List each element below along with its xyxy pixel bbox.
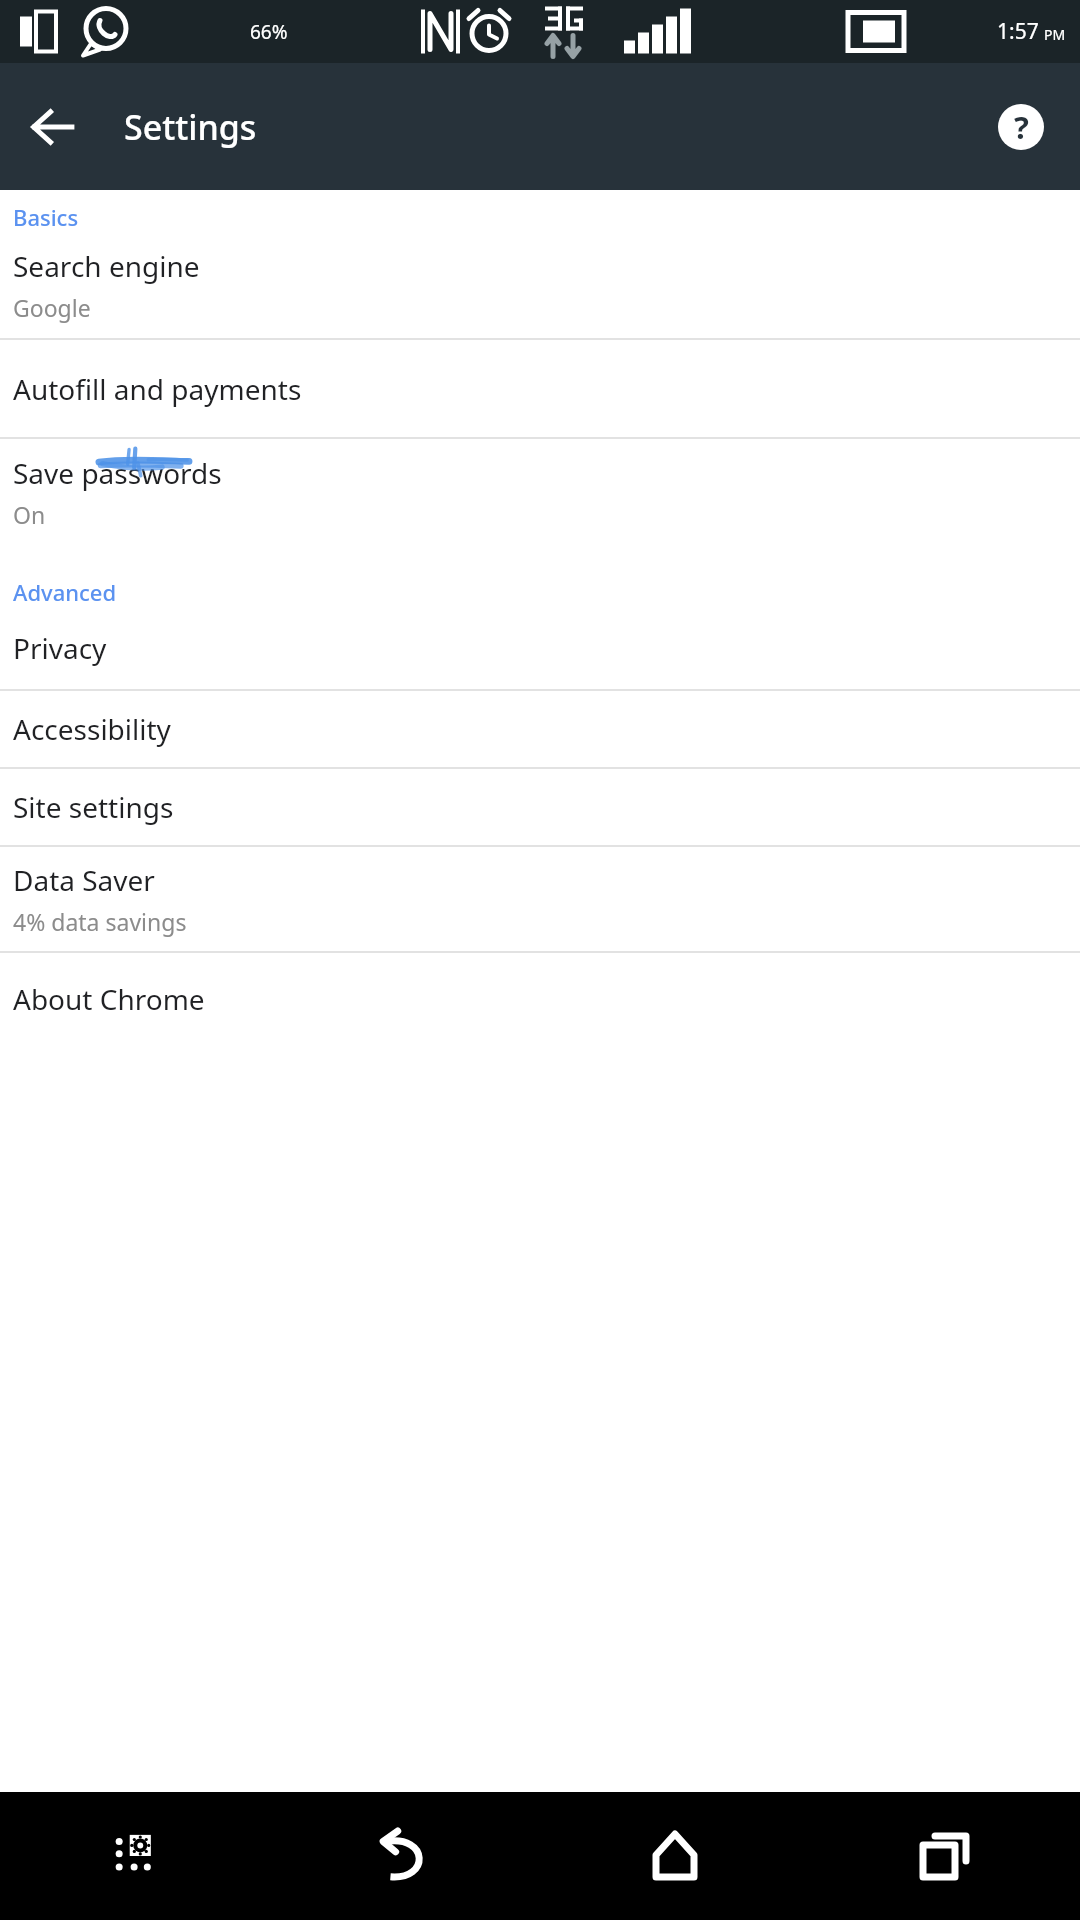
button[interactable]: Data Saver <box>0 847 1080 951</box>
button[interactable]: Search engine <box>0 232 1080 338</box>
staticText: ? <box>1014 106 1029 148</box>
staticText: On <box>13 499 46 530</box>
staticText: 4% data savings <box>13 906 187 937</box>
button[interactable]: Save passwords <box>0 439 1080 545</box>
staticText: Data Saver <box>13 861 155 899</box>
button[interactable]: Help <box>982 88 1060 166</box>
staticText: 66% <box>250 19 288 45</box>
staticText: Autofill and payments <box>13 370 302 408</box>
staticText: About Chrome <box>13 980 205 1018</box>
button[interactable]: About Chrome <box>0 953 1080 1045</box>
button[interactable]: Back <box>270 1792 540 1920</box>
staticText: 1:57 <box>997 17 1039 46</box>
staticText: Search engine <box>13 247 200 285</box>
button[interactable]: Home <box>540 1792 810 1920</box>
button[interactable]: Menu <box>0 1792 270 1920</box>
button[interactable]: Privacy <box>0 607 1080 689</box>
button[interactable]: Autofill and payments <box>0 340 1080 437</box>
staticText: Google <box>13 292 91 323</box>
button[interactable]: Accessibility <box>0 691 1080 767</box>
staticText: Privacy <box>13 629 107 667</box>
staticText: Settings <box>124 104 257 150</box>
button[interactable]: Back <box>12 86 94 168</box>
staticText: Site settings <box>13 788 174 826</box>
staticText: Save passwords <box>13 454 222 492</box>
staticText: Accessibility <box>13 710 171 748</box>
staticText: PM <box>1044 25 1066 44</box>
button[interactable]: Site settings <box>0 769 1080 845</box>
staticText: Advanced <box>13 577 117 607</box>
button[interactable]: Recent apps <box>810 1792 1080 1920</box>
staticText: Basics <box>13 202 79 232</box>
